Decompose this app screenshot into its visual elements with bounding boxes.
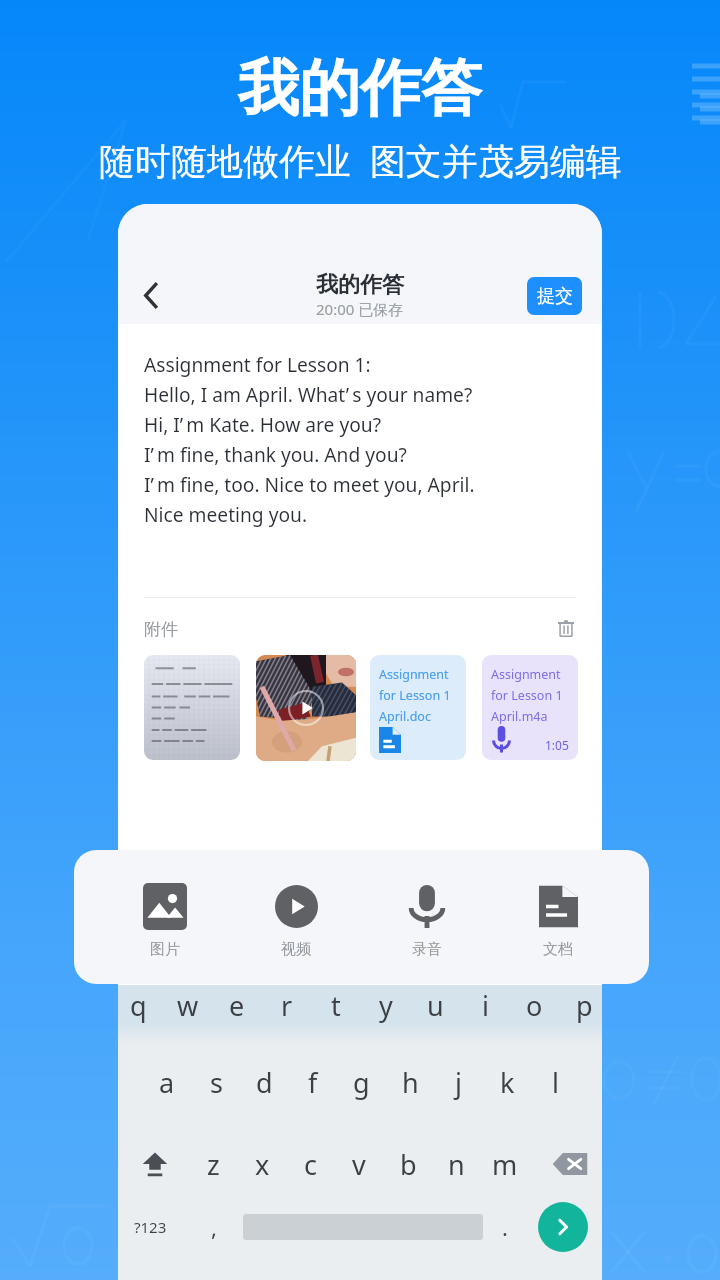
staticText: 文档 bbox=[543, 940, 573, 959]
staticText: h bbox=[402, 1064, 419, 1101]
staticText: r bbox=[281, 987, 293, 1024]
button[interactable]: z bbox=[194, 1142, 232, 1186]
button[interactable]: Video attachment bbox=[256, 655, 356, 761]
staticText: 我的作答 bbox=[238, 50, 482, 127]
staticText: v bbox=[352, 1146, 366, 1183]
staticText: 提交 bbox=[537, 285, 573, 308]
staticText: d bbox=[256, 1064, 273, 1101]
button[interactable]: j bbox=[439, 1060, 477, 1104]
staticText: p bbox=[576, 987, 593, 1024]
button[interactable]: Handwriting photo attachment bbox=[144, 655, 240, 760]
staticText: 录音 bbox=[412, 940, 442, 959]
staticText: 视频 bbox=[281, 940, 311, 959]
staticText: 随时随地做作业 图文并茂易编辑 bbox=[99, 136, 622, 185]
staticText: n bbox=[448, 1146, 465, 1183]
button[interactable]: c bbox=[291, 1142, 329, 1186]
button[interactable]: Record audio bbox=[379, 867, 475, 967]
staticText: ?123 bbox=[134, 1217, 167, 1237]
staticText: o bbox=[526, 987, 543, 1024]
button[interactable]: Audio attachment bbox=[482, 655, 578, 760]
button[interactable]: l bbox=[536, 1060, 574, 1104]
button[interactable]: w bbox=[169, 983, 207, 1027]
button[interactable]: Add document bbox=[510, 867, 606, 967]
staticText: y bbox=[379, 987, 393, 1024]
button[interactable]: k bbox=[488, 1060, 526, 1104]
staticText: u bbox=[427, 987, 444, 1024]
button[interactable]: , bbox=[193, 1205, 235, 1249]
staticText: 1:05 bbox=[545, 737, 569, 753]
staticText: 图片 bbox=[150, 940, 180, 959]
button[interactable]: Shift bbox=[133, 1142, 177, 1186]
button[interactable]: i bbox=[466, 983, 504, 1027]
button[interactable]: v bbox=[340, 1142, 378, 1186]
staticText: t bbox=[331, 987, 341, 1024]
button[interactable]: r bbox=[268, 983, 306, 1027]
staticText: f bbox=[308, 1064, 318, 1101]
staticText: Hi, I’ m Kate. How are you? bbox=[144, 411, 382, 437]
staticText: z bbox=[207, 1146, 220, 1183]
button[interactable]: n bbox=[437, 1142, 475, 1186]
button[interactable]: o bbox=[515, 983, 553, 1027]
button[interactable]: Delete attachments bbox=[550, 613, 581, 644]
staticText: b bbox=[400, 1146, 417, 1183]
staticText: q bbox=[130, 987, 147, 1024]
staticText: 我的作答 bbox=[316, 271, 404, 299]
staticText: 20:00 已保存 bbox=[316, 299, 404, 319]
staticText: c bbox=[304, 1146, 317, 1183]
staticText: Hello, I am April. What’ s your name? bbox=[144, 381, 473, 407]
button[interactable]: e bbox=[218, 983, 256, 1027]
button[interactable]: s bbox=[197, 1060, 235, 1104]
button[interactable]: g bbox=[342, 1060, 380, 1104]
button[interactable]: p bbox=[565, 983, 602, 1027]
staticText: I’ m fine, too. Nice to meet you, April. bbox=[144, 471, 475, 497]
staticText: Nice meeting you. bbox=[144, 501, 308, 527]
button[interactable]: Document attachment bbox=[370, 655, 466, 760]
staticText: l bbox=[552, 1064, 559, 1101]
staticText: x bbox=[255, 1146, 270, 1183]
button[interactable]: Send bbox=[538, 1202, 588, 1252]
staticText: , bbox=[211, 1212, 217, 1242]
button[interactable]: x bbox=[243, 1142, 281, 1186]
staticText: Assignment for Lesson 1 April.doc bbox=[379, 666, 451, 725]
staticText: Assignment for Lesson 1 April.m4a bbox=[491, 666, 563, 725]
button[interactable]: 提交 bbox=[527, 277, 582, 315]
staticText: Assignment for Lesson 1: bbox=[144, 351, 371, 377]
button[interactable]: a bbox=[148, 1060, 186, 1104]
button[interactable]: q bbox=[119, 983, 157, 1027]
staticText: s bbox=[210, 1064, 223, 1101]
button[interactable]: Back bbox=[122, 266, 180, 324]
staticText: a bbox=[159, 1064, 175, 1101]
button[interactable]: d bbox=[245, 1060, 283, 1104]
staticText: e bbox=[229, 987, 245, 1024]
staticText: j bbox=[455, 1064, 462, 1101]
button[interactable]: . bbox=[484, 1205, 526, 1249]
button[interactable]: u bbox=[416, 983, 454, 1027]
button[interactable]: m bbox=[486, 1142, 524, 1186]
button[interactable]: b bbox=[389, 1142, 427, 1186]
button[interactable]: ?123 bbox=[120, 1205, 180, 1249]
staticText: i bbox=[482, 987, 489, 1024]
button[interactable]: Add video bbox=[248, 867, 344, 967]
button[interactable]: y bbox=[367, 983, 405, 1027]
staticText: w bbox=[177, 987, 199, 1024]
staticText: m bbox=[492, 1146, 518, 1183]
button[interactable]: f bbox=[294, 1060, 332, 1104]
button[interactable]: Add picture bbox=[117, 867, 213, 967]
staticText: 附件 bbox=[144, 619, 178, 640]
staticText: k bbox=[500, 1064, 515, 1101]
button[interactable]: t bbox=[317, 983, 355, 1027]
button[interactable]: Backspace bbox=[547, 1145, 593, 1183]
staticText: I’ m fine, thank you. And you? bbox=[144, 441, 407, 467]
button[interactable]: h bbox=[391, 1060, 429, 1104]
staticText: . bbox=[502, 1212, 508, 1242]
staticText: g bbox=[353, 1064, 370, 1101]
